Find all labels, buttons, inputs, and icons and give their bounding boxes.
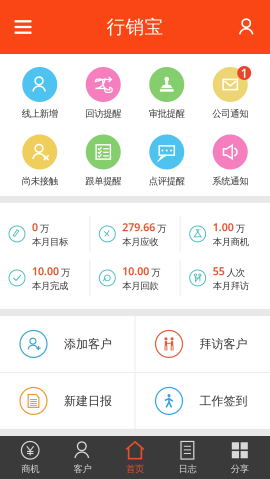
- button[interactable]: 客户: [56, 436, 109, 479]
- button[interactable]: 首页: [109, 436, 161, 479]
- staticText: 拜访客户: [199, 337, 247, 351]
- staticText: 1: [241, 65, 248, 81]
- staticText: 人次: [227, 267, 245, 278]
- button[interactable]: 新建日报: [0, 373, 134, 429]
- button[interactable]: 审批提醒: [135, 67, 198, 119]
- staticText: 回访提醒: [85, 108, 121, 119]
- staticText: 新建日报: [64, 394, 112, 408]
- staticText: 万: [151, 267, 160, 278]
- staticText: 点评提醒: [149, 175, 185, 187]
- staticText: 行销宝: [106, 15, 163, 38]
- button[interactable]: 回访提醒: [71, 67, 135, 119]
- staticText: 本月完成: [32, 280, 68, 292]
- button[interactable]: 系统通知: [198, 134, 262, 187]
- button[interactable]: 点评提醒: [135, 134, 198, 187]
- button[interactable]: Menu: [0, 0, 46, 54]
- staticText: 客户: [74, 463, 92, 475]
- staticText: 线上新增: [22, 108, 58, 119]
- staticText: 商机: [21, 463, 39, 475]
- staticText: 审批提醒: [149, 108, 185, 119]
- staticText: 本月商机: [213, 236, 249, 248]
- staticText: 本月目标: [32, 236, 68, 248]
- staticText: 55: [213, 264, 225, 278]
- staticText: 万: [40, 223, 49, 234]
- button[interactable]: 尚未接触: [8, 134, 71, 187]
- staticText: 添加客户: [64, 337, 112, 351]
- staticText: 10.00: [32, 264, 59, 278]
- button[interactable]: 拜访客户: [135, 316, 270, 372]
- button[interactable]: 商机: [4, 436, 56, 479]
- staticText: 跟单提醒: [85, 175, 121, 187]
- staticText: 1.00: [213, 220, 234, 234]
- staticText: 工作签到: [199, 394, 247, 408]
- staticText: 本月回款: [122, 280, 158, 292]
- staticText: 尚未接触: [22, 175, 58, 187]
- staticText: 系统通知: [212, 175, 248, 187]
- staticText: 10.00: [122, 264, 149, 278]
- button[interactable]: 添加客户: [0, 316, 134, 372]
- staticText: 279.66: [122, 220, 155, 234]
- button[interactable]: 线上新增: [8, 67, 71, 119]
- staticText: 万: [61, 267, 70, 278]
- staticText: 万: [157, 223, 166, 234]
- button[interactable]: 工作签到: [135, 373, 270, 429]
- button[interactable]: 1: [198, 67, 262, 119]
- staticText: 分享: [231, 463, 249, 475]
- staticText: 0: [32, 220, 38, 234]
- staticText: 本月拜访: [213, 280, 249, 292]
- staticText: 日志: [178, 463, 196, 475]
- staticText: 万: [236, 223, 245, 234]
- staticText: 公司通知: [212, 108, 248, 119]
- staticText: 首页: [126, 463, 144, 475]
- button[interactable]: 日志: [161, 436, 214, 479]
- button[interactable]: 跟单提醒: [71, 134, 135, 187]
- button[interactable]: 分享: [214, 436, 266, 479]
- button[interactable]: Profile: [224, 0, 270, 54]
- staticText: 本月应收: [122, 236, 158, 248]
